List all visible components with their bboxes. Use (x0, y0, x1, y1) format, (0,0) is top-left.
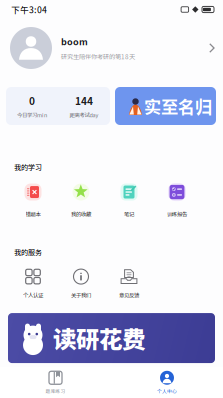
staticText: 题库练习 (45, 388, 65, 395)
button[interactable]: 意见反馈 (107, 268, 151, 302)
button[interactable]: 题库练习 (0, 367, 111, 398)
button[interactable]: 训练报告 (155, 183, 199, 217)
staticText: 下午3:04 (11, 3, 47, 16)
staticText: 个人中心 (157, 388, 177, 395)
staticText: boom (61, 35, 88, 48)
staticText: 读研花费 (53, 321, 145, 355)
staticText: 训练报告 (167, 210, 187, 218)
staticText: 我的服务 (14, 247, 42, 257)
staticText: 0 (29, 93, 35, 108)
button[interactable]: 实至名归 (115, 87, 216, 125)
staticText: 关于我们 (71, 291, 91, 299)
button[interactable]: 我的收藏 (59, 183, 103, 217)
button[interactable]: 个人中心 (111, 367, 223, 398)
staticText: 实至名归 (144, 93, 212, 119)
staticText: 今日学习min (17, 111, 47, 119)
button[interactable]: 错题本 (11, 183, 55, 217)
staticText: 144 (75, 93, 93, 108)
staticText: 距离考试day (69, 111, 98, 119)
staticText: 个人认证 (23, 291, 43, 299)
button[interactable]: 关于我们 (59, 268, 103, 302)
staticText: 研究生陪伴你考研的第18天 (61, 52, 135, 61)
staticText: 笔记 (124, 210, 134, 218)
staticText: 我的收藏 (71, 210, 91, 218)
button[interactable]: 读研花费 (8, 313, 215, 363)
staticText: 我的学习 (14, 162, 42, 172)
staticText: 意见反馈 (119, 291, 139, 299)
button[interactable]: boom (0, 19, 223, 77)
button[interactable]: 个人认证 (11, 268, 55, 302)
button[interactable]: 笔记 (107, 183, 151, 217)
staticText: 错题本 (25, 210, 40, 218)
